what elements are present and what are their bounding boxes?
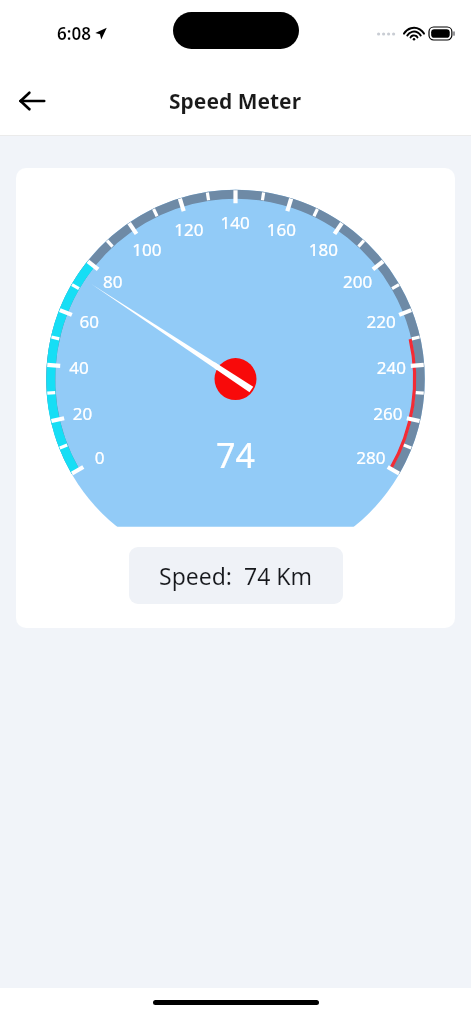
- staticText: Speed Meter: [169, 87, 302, 116]
- staticText: 6:08: [57, 22, 91, 45]
- button[interactable]: Speed: 74 Km: [129, 547, 343, 604]
- button[interactable]: Back: [8, 77, 56, 125]
- staticText: Speed: 74 Km: [159, 560, 313, 591]
